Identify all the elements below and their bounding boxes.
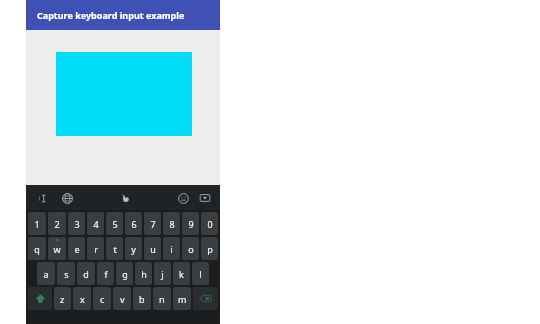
- staticText: 0: [207, 218, 213, 230]
- staticText: j: [161, 268, 164, 280]
- button[interactable]: j: [154, 262, 171, 285]
- staticText: z: [60, 293, 65, 305]
- staticText: 9: [188, 218, 194, 230]
- staticText: 3: [74, 218, 80, 230]
- button[interactable]: Shift: [28, 287, 52, 310]
- button[interactable]: u: [144, 237, 161, 260]
- button[interactable]: l: [192, 262, 209, 285]
- staticText: h: [141, 268, 147, 280]
- button[interactable]: t: [106, 237, 123, 260]
- button[interactable]: h: [135, 262, 152, 285]
- button[interactable]: 5: [106, 212, 123, 235]
- staticText: x: [80, 293, 85, 305]
- button[interactable]: Handwriting: [116, 189, 134, 207]
- staticText: 6: [131, 218, 137, 230]
- button[interactable]: 1: [28, 212, 46, 235]
- staticText: d: [83, 268, 89, 280]
- button[interactable]: g: [116, 262, 133, 285]
- button[interactable]: c: [93, 287, 111, 310]
- button[interactable]: Text cursor: [34, 189, 52, 207]
- button[interactable]: z: [54, 287, 71, 310]
- button[interactable]: Emoji: [174, 189, 192, 207]
- staticText: w: [53, 243, 61, 255]
- button[interactable]: m: [173, 287, 191, 310]
- button[interactable]: f: [97, 262, 114, 285]
- staticText: f: [104, 268, 108, 280]
- staticText: i: [170, 243, 173, 255]
- staticText: Capture keyboard input example: [37, 9, 185, 21]
- button[interactable]: e: [68, 237, 85, 260]
- staticText: 5: [112, 218, 118, 230]
- button[interactable]: p: [201, 237, 218, 260]
- button[interactable]: a: [37, 262, 55, 285]
- button[interactable]: 4: [87, 212, 104, 235]
- staticText: t: [113, 243, 117, 255]
- staticText: 4: [93, 218, 99, 230]
- staticText: k: [179, 268, 184, 280]
- staticText: p: [207, 243, 213, 255]
- staticText: v: [120, 293, 125, 305]
- button[interactable]: o: [182, 237, 199, 260]
- button[interactable]: 7: [144, 212, 161, 235]
- staticText: n: [159, 293, 165, 305]
- button[interactable]: 3: [68, 212, 85, 235]
- button[interactable]: 9: [182, 212, 199, 235]
- button[interactable]: b: [133, 287, 151, 310]
- button[interactable]: 2: [48, 212, 66, 235]
- button[interactable]: s: [57, 262, 75, 285]
- button[interactable]: y: [125, 237, 142, 260]
- button[interactable]: Hide keyboard: [196, 189, 214, 207]
- staticText: 2: [54, 218, 60, 230]
- staticText: y: [131, 243, 136, 255]
- staticText: a: [43, 268, 49, 280]
- button[interactable]: v: [113, 287, 131, 310]
- button[interactable]: 6: [125, 212, 142, 235]
- staticText: u: [150, 243, 156, 255]
- staticText: s: [56, 237, 58, 242]
- button[interactable]: d: [77, 262, 95, 285]
- button[interactable]: Change language: [58, 189, 76, 207]
- staticText: 8: [169, 218, 175, 230]
- button[interactable]: i: [163, 237, 180, 260]
- button[interactable]: Backspace: [193, 287, 218, 310]
- staticText: 7: [150, 218, 156, 230]
- staticText: e: [74, 243, 80, 255]
- staticText: g: [122, 268, 128, 280]
- staticText: o: [188, 243, 194, 255]
- staticText: c: [100, 293, 105, 305]
- staticText: 1: [34, 218, 40, 230]
- button[interactable]: 0: [201, 212, 218, 235]
- button[interactable]: k: [173, 262, 190, 285]
- button[interactable]: x: [73, 287, 91, 310]
- staticText: m: [178, 293, 187, 305]
- staticText: b: [139, 293, 145, 305]
- button[interactable]: 8: [163, 212, 180, 235]
- staticText: l: [199, 268, 202, 280]
- button[interactable]: n: [153, 287, 171, 310]
- button[interactable]: w: [48, 237, 66, 260]
- staticText: r: [94, 243, 98, 255]
- button[interactable]: r: [87, 237, 104, 260]
- button[interactable]: q: [28, 237, 46, 260]
- staticText: s: [64, 268, 69, 280]
- staticText: q: [34, 243, 40, 255]
